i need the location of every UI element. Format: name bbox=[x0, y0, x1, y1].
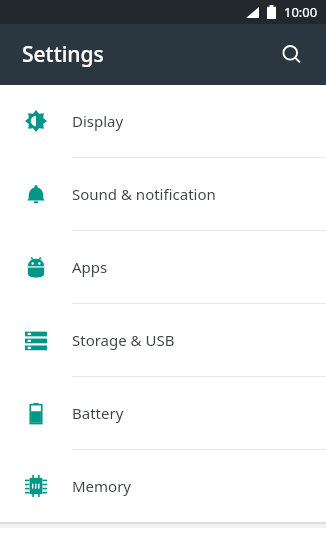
button[interactable]: Display bbox=[0, 85, 326, 157]
staticText: 10:00 bbox=[284, 3, 318, 21]
button[interactable]: Battery bbox=[0, 377, 326, 449]
staticText: Storage & USB bbox=[72, 330, 175, 350]
button[interactable]: Memory bbox=[0, 450, 326, 522]
button[interactable]: Search bbox=[270, 33, 314, 77]
staticText: Sound & notification bbox=[72, 184, 216, 204]
staticText: Memory bbox=[72, 476, 132, 496]
staticText: Settings bbox=[22, 40, 104, 69]
staticText: Display bbox=[72, 111, 124, 131]
button[interactable]: Storage & USB bbox=[0, 304, 326, 376]
button[interactable]: Sound & notification bbox=[0, 158, 326, 230]
staticText: Battery bbox=[72, 403, 124, 423]
staticText: Apps bbox=[72, 257, 108, 277]
button[interactable]: Apps bbox=[0, 231, 326, 303]
